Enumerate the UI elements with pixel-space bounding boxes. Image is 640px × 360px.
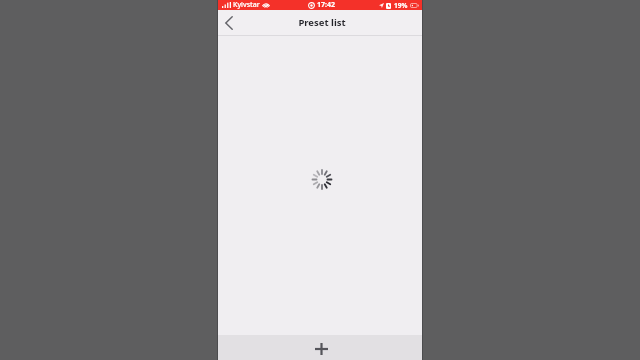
button[interactable]: Add preset	[218, 335, 422, 360]
button[interactable]: Back	[218, 10, 240, 36]
staticText: Kyivstar	[233, 0, 260, 10]
staticText: 19%	[394, 1, 408, 10]
staticText: 17:42	[317, 0, 335, 10]
staticText: Preset list	[298, 16, 346, 29]
